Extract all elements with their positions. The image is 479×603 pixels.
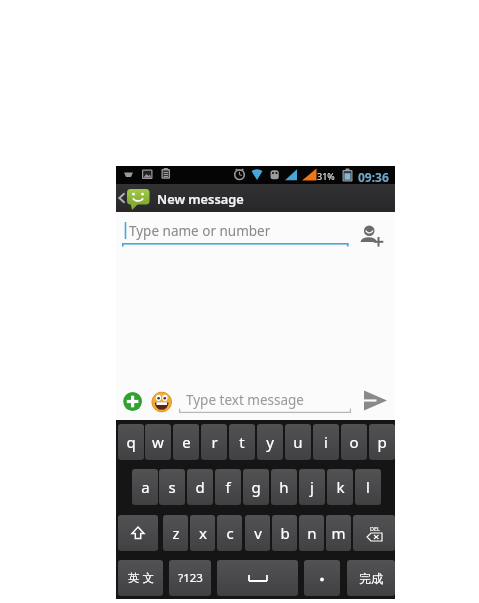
button[interactable]: New message	[116, 184, 395, 212]
button[interactable]: l	[355, 469, 381, 505]
staticText: m	[331, 523, 346, 543]
staticText: l	[366, 477, 370, 497]
button[interactable]: x	[190, 515, 215, 551]
button[interactable]	[123, 387, 143, 415]
staticText: q	[126, 432, 136, 452]
staticText: z	[172, 523, 180, 543]
staticText: 09:36	[358, 169, 389, 185]
staticText: g	[251, 477, 261, 497]
button[interactable]	[151, 387, 173, 415]
button[interactable]	[179, 384, 351, 414]
button[interactable]: z	[163, 515, 188, 551]
button[interactable]	[358, 386, 390, 416]
button[interactable]: u	[285, 424, 311, 460]
button[interactable]: w	[145, 424, 171, 460]
staticText: y	[266, 432, 274, 452]
button[interactable]: n	[299, 515, 324, 551]
staticText: f	[225, 477, 231, 497]
staticText: 完成	[359, 571, 383, 586]
button[interactable]	[121, 217, 351, 249]
button[interactable]: ?123	[169, 560, 211, 596]
staticText: h	[279, 477, 289, 497]
button[interactable]: r	[201, 424, 227, 460]
staticText: s	[168, 477, 176, 497]
button[interactable]	[217, 560, 298, 596]
button[interactable]: i	[313, 424, 339, 460]
staticText: n	[307, 523, 317, 543]
button[interactable]: o	[341, 424, 367, 460]
staticText: e	[182, 432, 191, 452]
staticText: t	[239, 432, 245, 452]
button[interactable]: 完成	[347, 560, 395, 596]
button[interactable]	[358, 220, 390, 250]
staticText: u	[293, 432, 303, 452]
staticText: x	[199, 523, 207, 543]
staticText: d	[195, 477, 205, 497]
button[interactable]: c	[217, 515, 242, 551]
button[interactable]	[118, 515, 158, 551]
staticText: r	[211, 432, 218, 452]
button[interactable]: k	[327, 469, 353, 505]
staticText: i	[324, 432, 328, 452]
button[interactable]: DEL	[353, 515, 395, 551]
button[interactable]: b	[272, 515, 297, 551]
staticText: 英 文	[128, 570, 154, 586]
staticText: w	[152, 432, 164, 452]
button[interactable]: t	[229, 424, 255, 460]
staticText: a	[141, 477, 150, 497]
staticText: 31%	[317, 170, 335, 182]
button[interactable]: s	[159, 469, 185, 505]
button[interactable]: y	[257, 424, 283, 460]
staticText: Type name or number	[129, 222, 271, 240]
button[interactable]: g	[243, 469, 269, 505]
staticText: p	[377, 432, 387, 452]
staticText: o	[349, 432, 359, 452]
staticText: j	[310, 477, 314, 497]
staticText: ?123	[178, 570, 203, 586]
staticText: New message	[157, 190, 244, 207]
staticText: DEL	[370, 525, 380, 532]
button[interactable]: h	[271, 469, 297, 505]
button[interactable]: 英 文	[118, 560, 163, 596]
button[interactable]: j	[299, 469, 325, 505]
staticText: b	[280, 523, 290, 543]
button[interactable]: m	[326, 515, 351, 551]
button[interactable]: q	[118, 424, 144, 460]
staticText: v	[254, 523, 262, 543]
button[interactable]: d	[187, 469, 213, 505]
staticText: k	[336, 477, 345, 497]
button[interactable]	[304, 560, 340, 596]
button[interactable]: a	[132, 469, 158, 505]
button[interactable]: e	[173, 424, 199, 460]
button[interactable]: p	[369, 424, 395, 460]
button[interactable]: v	[245, 515, 270, 551]
button[interactable]: f	[215, 469, 241, 505]
staticText: Type text message	[186, 391, 304, 409]
staticText: c	[226, 523, 234, 543]
